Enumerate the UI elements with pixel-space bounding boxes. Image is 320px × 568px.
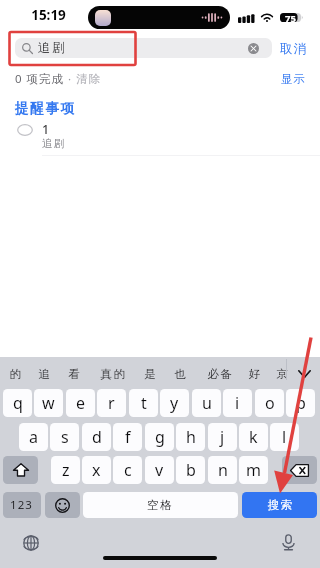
button[interactable]: 是 (137, 365, 165, 383)
button[interactable]: h (176, 423, 205, 451)
staticText: b (186, 459, 196, 481)
button[interactable]: 京 (269, 365, 297, 383)
button[interactable]: k (239, 423, 268, 451)
button[interactable]: 显示 (281, 72, 306, 86)
button[interactable]: p (286, 389, 315, 417)
button[interactable]: v (145, 456, 174, 484)
staticText: p (296, 392, 306, 414)
button[interactable]: y (160, 389, 189, 417)
staticText: k (249, 426, 258, 448)
staticText: · (68, 71, 76, 87)
staticText: 必备 (207, 367, 234, 381)
staticText: 京 (276, 367, 290, 381)
button[interactable]: a (19, 423, 48, 451)
staticText: z (62, 459, 70, 481)
staticText: u (202, 392, 212, 414)
button[interactable]: f (113, 423, 142, 451)
staticText: a (29, 426, 38, 448)
staticText: d (92, 426, 102, 448)
button[interactable]: l (270, 423, 299, 451)
staticText: t (141, 392, 147, 414)
button[interactable]: Shift (3, 456, 38, 484)
button[interactable]: u (192, 389, 221, 417)
button[interactable]: 好 (241, 365, 269, 383)
staticText: 追剧 (42, 137, 66, 150)
staticText: i (235, 392, 240, 414)
button[interactable]: 真的 (93, 365, 133, 383)
staticText: g (155, 426, 165, 448)
staticText: 搜索 (267, 498, 293, 512)
staticText: 好 (248, 367, 262, 381)
staticText: y (170, 392, 179, 414)
button[interactable]: n (208, 456, 237, 484)
button[interactable]: d (82, 423, 111, 451)
button[interactable]: Backspace (282, 456, 317, 484)
staticText: 15:19 (31, 6, 66, 24)
button[interactable]: 1 (0, 120, 320, 156)
button[interactable]: x (82, 456, 111, 484)
button[interactable]: j (208, 423, 237, 451)
staticText: 真的 (100, 367, 127, 381)
staticText: x (92, 459, 101, 481)
staticText: f (125, 426, 131, 448)
staticText: 1 (42, 121, 50, 138)
button[interactable]: g (145, 423, 174, 451)
button[interactable]: Change keyboard (20, 532, 42, 554)
staticText: s (61, 426, 69, 448)
staticText: w (42, 392, 55, 414)
staticText: 75 (285, 12, 296, 22)
staticText: q (13, 392, 23, 414)
button[interactable]: Emoji (45, 492, 80, 518)
button[interactable]: 追 (31, 365, 59, 383)
staticText: 看 (68, 367, 82, 381)
staticText: j (220, 426, 225, 448)
button[interactable]: z (51, 456, 80, 484)
staticText: m (246, 459, 261, 481)
staticText: 追 (38, 367, 52, 381)
staticText: 追剧 (38, 40, 66, 56)
button[interactable]: w (34, 389, 63, 417)
button[interactable]: 空格 (83, 492, 238, 518)
staticText: 取消 (280, 41, 308, 57)
staticText: 提醒事项 (15, 100, 76, 117)
staticText: 0 项完成 (15, 71, 68, 87)
button[interactable]: 必备 (200, 365, 240, 383)
staticText: 的 (9, 367, 23, 381)
staticText: e (76, 392, 86, 414)
staticText: r (108, 392, 115, 414)
staticText: c (124, 459, 132, 481)
staticText: v (155, 459, 164, 481)
button[interactable]: e (66, 389, 95, 417)
staticText: h (186, 426, 196, 448)
staticText: 清除 (76, 72, 101, 86)
staticText: l (282, 426, 287, 448)
button[interactable]: 搜索 (242, 492, 317, 518)
staticText: 空格 (147, 498, 174, 512)
button[interactable]: 也 (167, 365, 195, 383)
button[interactable]: 清除 (76, 72, 101, 86)
staticText: 是 (144, 367, 158, 381)
button[interactable]: c (113, 456, 142, 484)
button[interactable]: s (50, 423, 79, 451)
button[interactable]: o (255, 389, 284, 417)
button[interactable]: 的 (2, 365, 30, 383)
staticText: 123 (10, 497, 34, 513)
button[interactable]: t (129, 389, 158, 417)
button[interactable]: 看 (61, 365, 89, 383)
button[interactable]: Clear text (248, 43, 259, 54)
button[interactable]: 追剧 (15, 38, 272, 58)
button[interactable]: m (239, 456, 268, 484)
button[interactable]: Dictate (277, 531, 299, 553)
staticText: n (218, 459, 228, 481)
button[interactable]: 123 (3, 492, 41, 518)
button[interactable]: b (176, 456, 205, 484)
button[interactable]: 取消 (280, 41, 308, 57)
button[interactable]: More suggestions (293, 364, 315, 384)
button[interactable]: r (97, 389, 126, 417)
staticText: o (265, 392, 275, 414)
button[interactable]: i (223, 389, 252, 417)
button[interactable]: q (3, 389, 32, 417)
staticText: 显示 (281, 72, 306, 86)
staticText: 也 (174, 367, 188, 381)
